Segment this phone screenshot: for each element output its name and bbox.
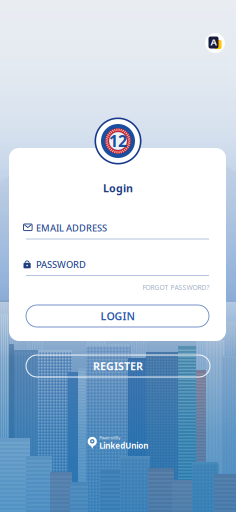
staticText: FORGOT PASSWORD? xyxy=(142,283,209,292)
staticText: EMAIL ADDRESS xyxy=(36,222,107,234)
staticText: LinkedUnion xyxy=(99,440,148,451)
staticText: A xyxy=(210,36,216,48)
staticText: Powered By xyxy=(99,435,120,440)
staticText: Login xyxy=(103,181,133,195)
button[interactable]: FORGOT PASSWORD? xyxy=(127,281,209,293)
button[interactable]: LOGIN xyxy=(26,305,209,327)
button[interactable]: REGISTER xyxy=(26,355,210,377)
staticText: REGISTER xyxy=(93,359,143,373)
staticText: 12 xyxy=(109,130,127,151)
button[interactable]: Accessibility options xyxy=(204,32,226,54)
staticText: PASSWORD xyxy=(36,258,86,271)
staticText: LOGIN xyxy=(100,309,134,323)
